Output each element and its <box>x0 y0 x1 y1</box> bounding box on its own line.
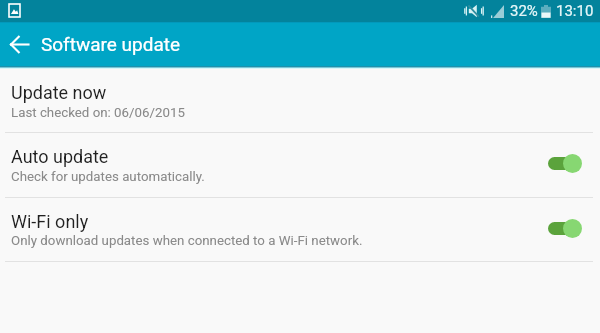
staticText: Auto update <box>11 146 109 167</box>
staticText: Software update <box>41 33 181 55</box>
button[interactable]: Update now <box>0 66 600 132</box>
staticText: 32% <box>510 2 538 20</box>
staticText: Update now <box>11 82 107 103</box>
staticText: Wi-Fi only <box>11 211 89 232</box>
staticText: Check for updates automatically. <box>11 169 205 185</box>
button[interactable]: Wi-Fi only <box>0 197 600 262</box>
button[interactable]: Back <box>1 26 37 62</box>
button[interactable]: Auto update <box>0 132 600 197</box>
staticText: Only download updates when connected to … <box>11 233 363 249</box>
staticText: Last checked on: 06/06/2015 <box>11 105 185 121</box>
button[interactable]: Toggle Wi-Fi only <box>548 215 582 241</box>
button[interactable]: Toggle Auto update <box>548 150 582 176</box>
staticText: 13:10 <box>556 2 594 20</box>
